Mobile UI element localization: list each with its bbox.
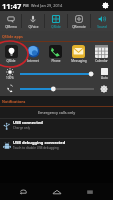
staticText: Internet xyxy=(27,59,39,63)
staticText: QRemote xyxy=(72,25,86,29)
button[interactable]: Back xyxy=(12,183,34,200)
button[interactable]: QVoice xyxy=(22,11,44,31)
button[interactable]: Sound settings xyxy=(97,82,111,96)
staticText: USB debugging connected xyxy=(13,140,66,145)
button[interactable]: QSlide xyxy=(45,11,67,31)
staticText: 100% xyxy=(6,76,14,80)
button[interactable]: QSlide xyxy=(0,42,22,66)
button[interactable]: Messaging xyxy=(67,42,90,66)
staticText: Charge only xyxy=(13,126,30,130)
staticText: Wed Jan 29, 2014 xyxy=(31,3,63,8)
button[interactable]: USB debugging connected xyxy=(0,139,113,158)
button[interactable]: Recent apps xyxy=(79,183,101,200)
staticText: USB connected xyxy=(13,120,43,125)
staticText: Sound xyxy=(97,25,107,29)
button[interactable]: USB connected xyxy=(0,119,113,138)
button[interactable]: Auto xyxy=(97,66,111,82)
button[interactable]: Sound xyxy=(91,11,113,31)
button[interactable]: Settings xyxy=(100,0,111,11)
staticText: Phone xyxy=(51,59,61,63)
staticText: Notifications xyxy=(2,99,26,104)
staticText: QSlide xyxy=(6,59,16,63)
staticText: QSlide apps xyxy=(2,34,23,39)
staticText: Emergency calls only xyxy=(38,110,76,115)
button[interactable]: Phone xyxy=(44,42,67,66)
staticText: QMemo xyxy=(5,25,17,29)
staticText: 11:47 xyxy=(2,1,22,11)
staticText: Touch to disable USB debugging xyxy=(13,146,59,150)
button[interactable]: Calendar xyxy=(90,42,113,66)
button[interactable]: Internet xyxy=(22,42,44,66)
button[interactable]: Sound settings xyxy=(0,82,113,96)
staticText: Calendar xyxy=(95,59,108,63)
button[interactable]: QRemote xyxy=(68,11,90,31)
staticText: PM xyxy=(23,3,29,8)
staticText: Auto xyxy=(101,76,108,80)
button[interactable]: Home xyxy=(46,183,68,200)
button[interactable]: 100% xyxy=(0,66,113,82)
staticText: QSlide xyxy=(51,25,61,29)
button[interactable]: QMemo xyxy=(0,11,21,31)
staticText: Messaging xyxy=(71,59,87,63)
staticText: QVoice xyxy=(28,25,39,29)
